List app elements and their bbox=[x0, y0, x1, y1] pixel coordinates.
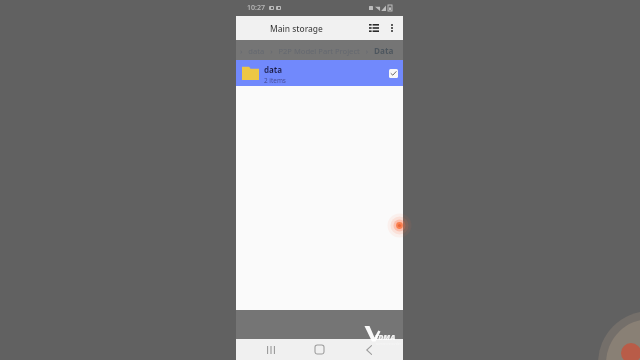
button[interactable]: Add bbox=[384, 210, 415, 241]
button[interactable]: Selected bbox=[383, 63, 403, 83]
button[interactable]: Home bbox=[295, 339, 344, 360]
button[interactable]: data bbox=[236, 60, 403, 86]
button[interactable]: Recents bbox=[246, 339, 295, 360]
button[interactable]: Back bbox=[344, 339, 393, 360]
staticText: Data bbox=[374, 45, 394, 56]
button[interactable]: More options bbox=[384, 17, 400, 39]
staticText: 2 items bbox=[264, 76, 286, 85]
staticText: Main storage bbox=[270, 23, 323, 34]
staticText: › data › P2P Model Part Project › bbox=[240, 46, 374, 56]
staticText: data bbox=[264, 64, 283, 75]
staticText: IDMA bbox=[375, 332, 396, 342]
button[interactable]: List view bbox=[364, 17, 384, 39]
staticText: 10:27 bbox=[247, 3, 265, 13]
